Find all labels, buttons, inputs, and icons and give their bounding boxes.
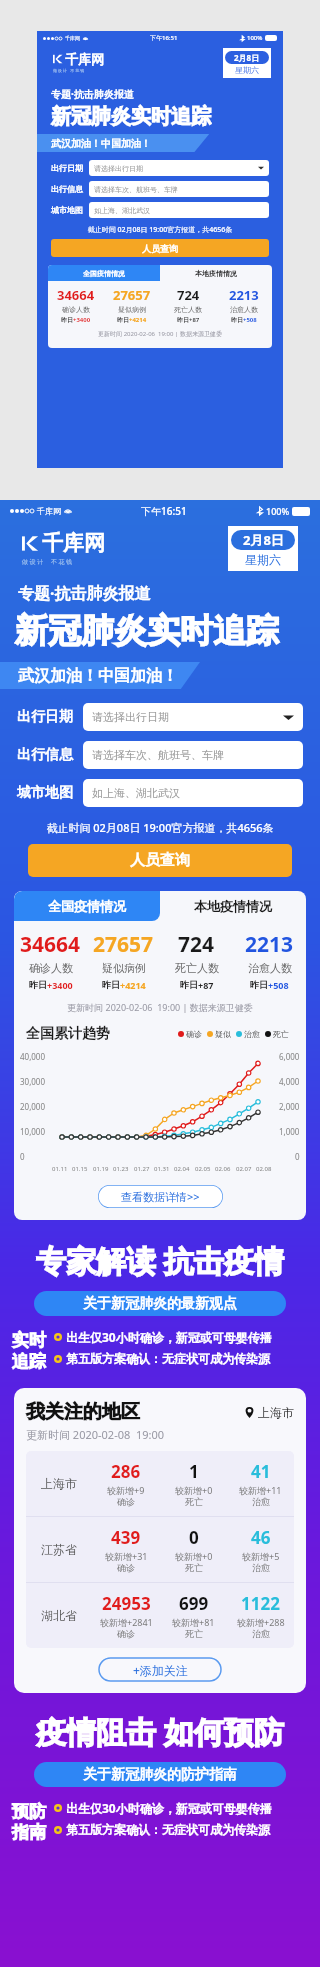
button[interactable]: 请选择车次、航班号、车牌 xyxy=(83,741,303,769)
button[interactable]: 出生仅30小时确诊，新冠或可母婴传播 xyxy=(54,1800,272,1816)
staticText: 死亡 xyxy=(185,1496,203,1507)
staticText: 截止时间 02月08日 19:00官方报道，共4656条 xyxy=(0,820,320,835)
staticText: 指南 xyxy=(12,1822,46,1843)
staticText: 27657 xyxy=(93,930,154,959)
staticText: 01.19 xyxy=(93,1165,109,1173)
staticText: 2月8日 xyxy=(234,52,260,63)
button[interactable]: 全国疫情情况 xyxy=(48,265,160,281)
staticText: +508 xyxy=(243,316,257,324)
button[interactable]: 人员查询 xyxy=(28,844,292,877)
staticText: 01.31 xyxy=(154,1165,170,1173)
button[interactable]: 湖北省 xyxy=(26,1592,294,1639)
button[interactable]: 查看数据详情>> xyxy=(98,1185,223,1208)
staticText: 治愈 xyxy=(244,1029,260,1039)
staticText: 上海市 xyxy=(258,1405,294,1420)
button[interactable]: +添加关注 xyxy=(99,1658,221,1681)
staticText: 疫情阻击 如何预防 xyxy=(36,1711,284,1752)
button[interactable]: 关于新冠肺炎的最新观点 xyxy=(34,1291,286,1316)
staticText: 疑似病例 xyxy=(102,961,146,975)
staticText: 2月8日 xyxy=(243,531,284,549)
staticText: 专题·抗击肺炎报道 xyxy=(51,87,134,101)
staticText: 死亡 xyxy=(185,1628,203,1639)
staticText: +87 xyxy=(198,979,214,991)
staticText: 新冠肺炎实时追踪 xyxy=(51,104,211,129)
button[interactable]: 请选择车次、航班号、车牌 xyxy=(94,181,264,197)
staticText: 昨日 xyxy=(61,316,73,324)
staticText: +4214 xyxy=(129,316,147,324)
staticText: 02.04 xyxy=(174,1165,190,1173)
staticText: 武汉加油！中国加油！ xyxy=(51,137,151,150)
staticText: 星期六 xyxy=(235,65,259,75)
staticText: 昨日 xyxy=(231,316,243,324)
staticText: 出行信息 xyxy=(17,746,73,764)
staticText: 新冠肺炎实时追踪 xyxy=(15,610,279,652)
staticText: 286 xyxy=(111,1460,141,1483)
staticText: 昨日 xyxy=(250,979,268,990)
staticText: 专家解读 抗击疫情 xyxy=(36,1240,284,1281)
staticText: 星期六 xyxy=(245,552,281,567)
staticText: 实时 xyxy=(12,1330,46,1351)
staticText: 昨日 xyxy=(102,979,120,990)
staticText: 死亡 xyxy=(273,1029,289,1039)
button[interactable]: 第五版方案确认：无症状可成为传染源 xyxy=(54,1351,270,1366)
staticText: 请选择车次、航班号、车牌 xyxy=(94,185,178,194)
button[interactable]: 第五版方案确认：无症状可成为传染源 xyxy=(54,1822,270,1837)
staticText: 如上海、湖北武汉 xyxy=(94,206,150,215)
staticText: 较新增+9 xyxy=(107,1484,145,1496)
staticText: 2213 xyxy=(245,930,294,959)
staticText: 724 xyxy=(178,930,215,959)
staticText: 做 设 计 不 花 钱 xyxy=(53,68,85,73)
button[interactable]: 如上海、湖北武汉 xyxy=(83,779,303,807)
button[interactable]: 请选择出行日期 xyxy=(83,703,303,731)
staticText: 城市地图 xyxy=(51,205,83,215)
button[interactable]: 江苏省 xyxy=(26,1526,294,1573)
button[interactable]: 关于新冠肺炎的防护指南 xyxy=(34,1762,286,1787)
button[interactable]: Location xyxy=(244,1405,294,1420)
button[interactable]: 本地疫情情况 xyxy=(160,265,272,281)
staticText: 本地疫情情况 xyxy=(194,898,272,914)
staticText: 439 xyxy=(111,1526,141,1549)
button[interactable]: 2月8日 xyxy=(228,526,298,571)
staticText: 治愈 xyxy=(252,1562,270,1573)
staticText: 第五版方案确认：无症状可成为传染源 xyxy=(66,1822,270,1837)
staticText: 江苏省 xyxy=(41,1542,77,1557)
staticText: 确诊 xyxy=(117,1496,135,1507)
staticText: 确诊 xyxy=(117,1562,135,1573)
staticText: 确诊 xyxy=(117,1628,135,1639)
staticText: 下午16:51 xyxy=(141,504,187,518)
staticText: 如上海、湖北武汉 xyxy=(92,786,180,800)
button[interactable]: 请选择出行日期 xyxy=(94,160,264,176)
staticText: 724 xyxy=(177,286,200,304)
staticText: 人员查询 xyxy=(130,851,190,870)
staticText: 100% xyxy=(247,34,263,42)
button[interactable]: 2月8日 xyxy=(223,48,271,78)
staticText: 请选择车次、航班号、车牌 xyxy=(92,748,224,762)
staticText: 出行信息 xyxy=(51,184,83,194)
staticText: 01.11 xyxy=(52,1165,68,1173)
staticText: 千库网 xyxy=(42,530,105,556)
staticText: 01.15 xyxy=(72,1165,88,1173)
staticText: 治愈 xyxy=(252,1628,270,1639)
staticText: 关于新冠肺炎的防护指南 xyxy=(83,1766,237,1784)
staticText: 疑似 xyxy=(215,1029,231,1039)
staticText: 昨日 xyxy=(117,316,129,324)
button[interactable]: 人员查询 xyxy=(51,239,269,257)
button[interactable]: 上海市 xyxy=(26,1460,294,1507)
staticText: 01.27 xyxy=(134,1165,150,1173)
button[interactable]: 出生仅30小时确诊，新冠或可母婴传播 xyxy=(54,1329,272,1345)
staticText: 699 xyxy=(179,1592,209,1615)
staticText: 46 xyxy=(251,1526,271,1549)
button[interactable]: 本地疫情情况 xyxy=(160,891,306,921)
button[interactable]: 全国疫情情况 xyxy=(14,891,160,921)
staticText: 1122 xyxy=(241,1592,280,1615)
staticText: 上海市 xyxy=(41,1476,77,1491)
staticText: 昨日 xyxy=(180,979,198,990)
staticText: 24953 xyxy=(102,1592,151,1615)
staticText: 千库网 xyxy=(65,51,104,67)
staticText: 出行日期 xyxy=(17,708,73,726)
staticText: 更新时间 2020-02-06 19:00 | 数据来源卫健委 xyxy=(14,1001,306,1013)
staticText: 02.05 xyxy=(195,1165,211,1173)
staticText: +508 xyxy=(268,979,289,991)
button[interactable]: 如上海、湖北武汉 xyxy=(94,202,264,218)
staticText: 20,000 xyxy=(20,1101,46,1112)
